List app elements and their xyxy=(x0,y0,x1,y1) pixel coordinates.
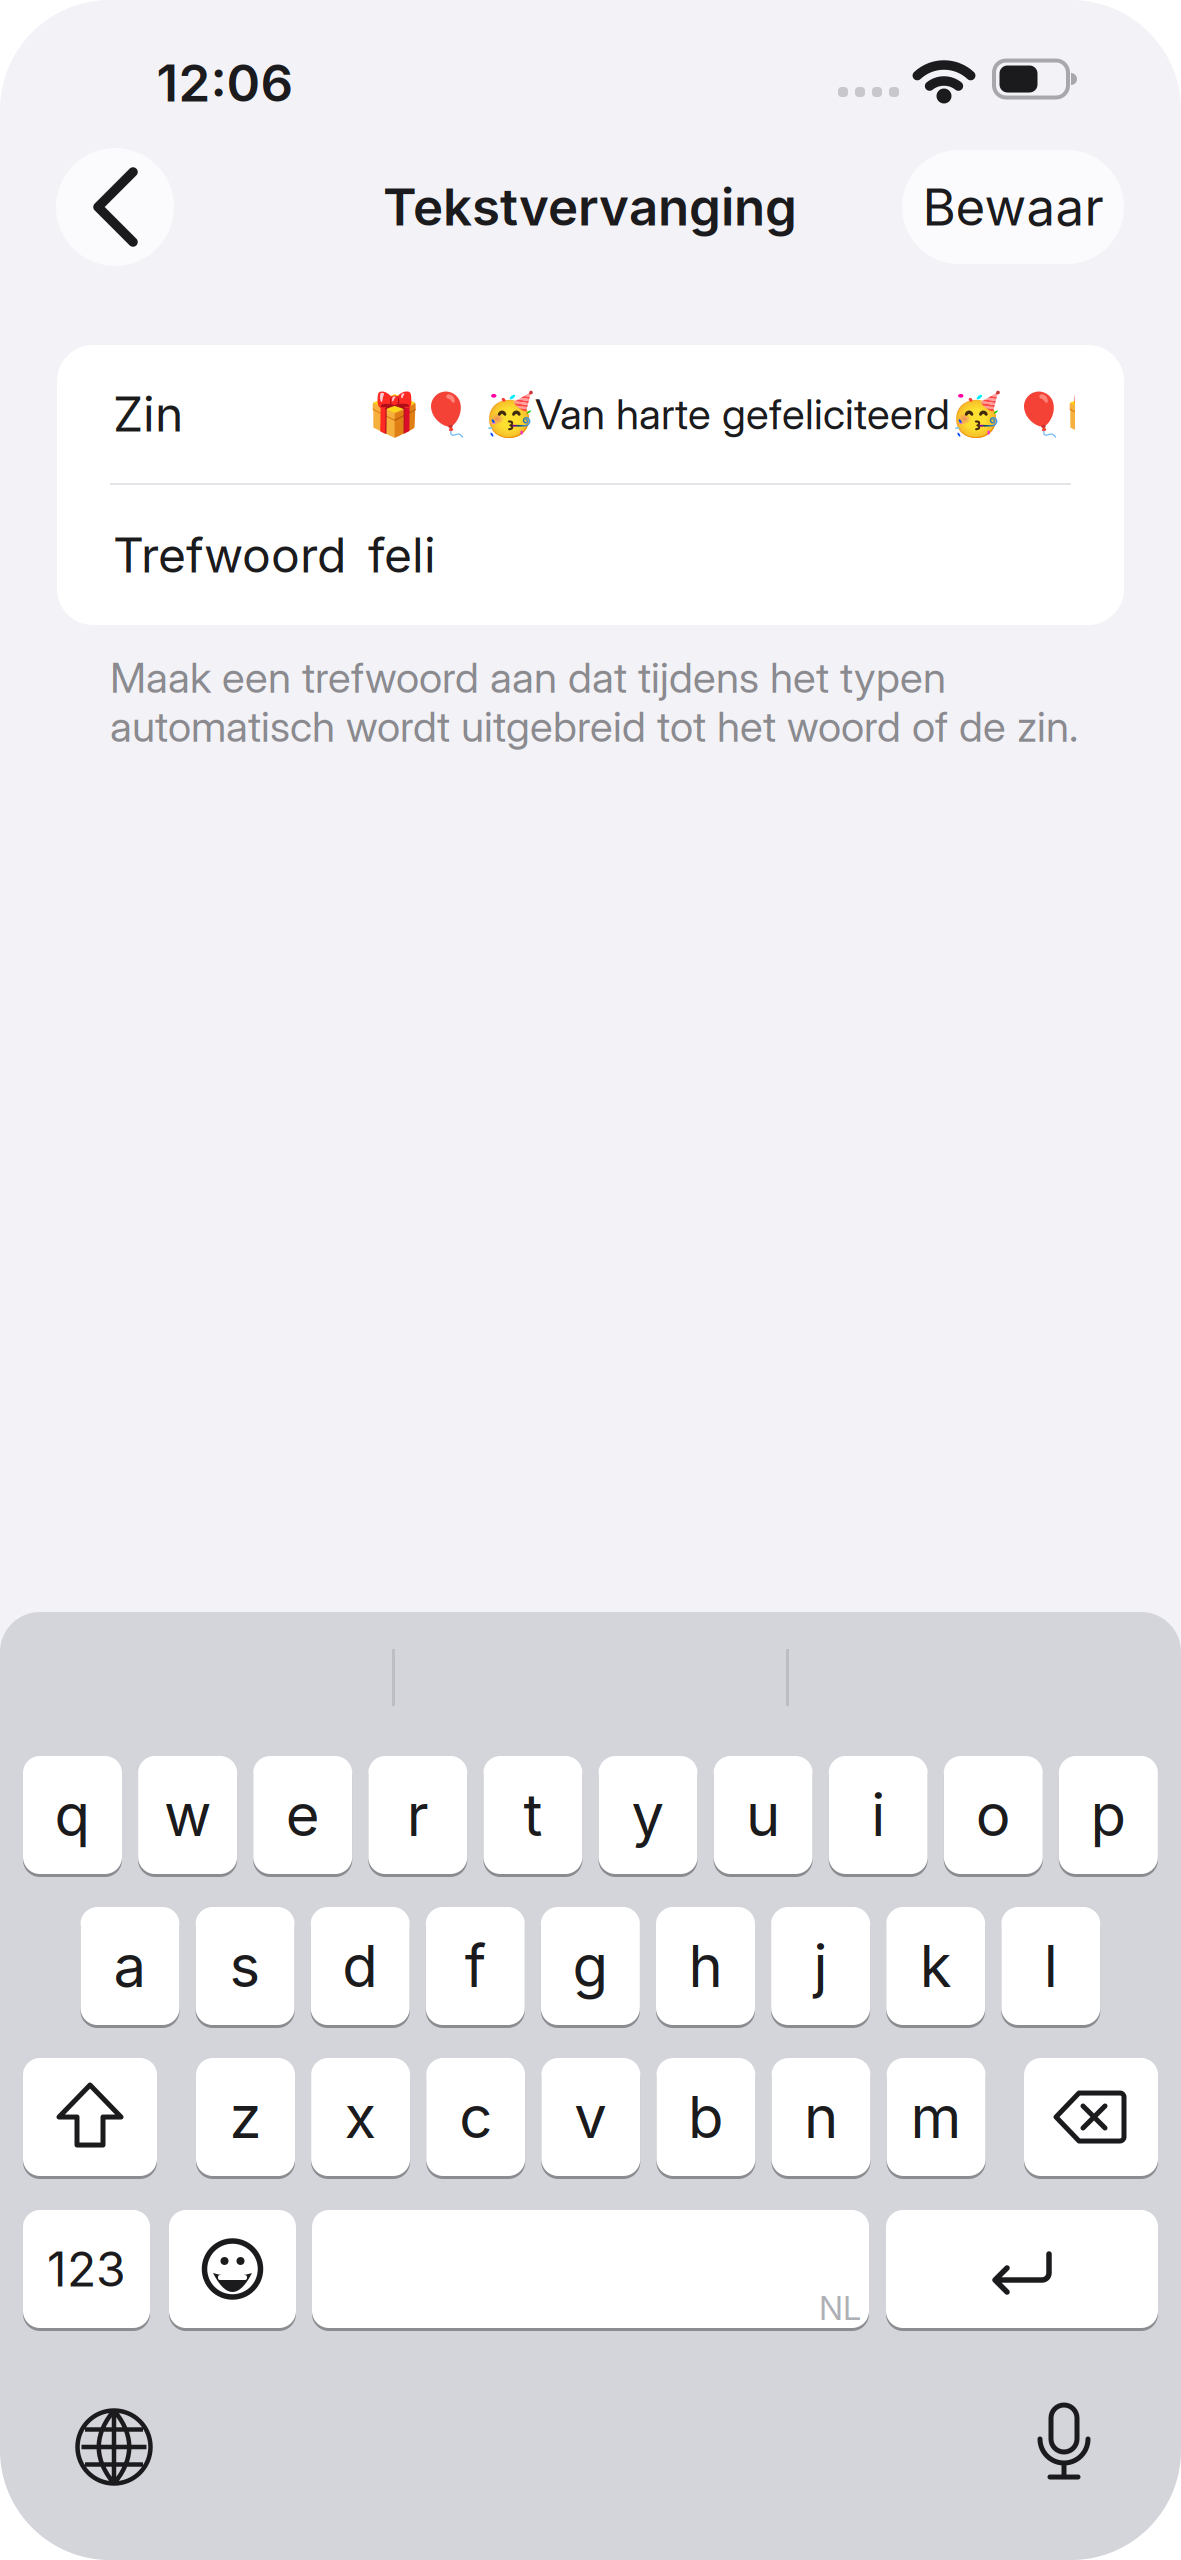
button[interactable]: Shift xyxy=(23,2058,157,2176)
button[interactable]: n xyxy=(771,2058,870,2176)
staticText: z xyxy=(229,2082,261,2152)
button[interactable]: q xyxy=(23,1756,122,1874)
staticText: 123 xyxy=(47,2240,126,2298)
button[interactable]: u xyxy=(714,1756,813,1874)
button[interactable]: k xyxy=(886,1907,985,2025)
staticText: Trefwoord xyxy=(113,526,346,584)
staticText: m xyxy=(911,2082,962,2152)
staticText: 12:06 xyxy=(156,52,293,114)
staticText: Maak een trefwoord aan dat tijdens het t… xyxy=(110,652,946,703)
staticText: q xyxy=(54,1780,90,1850)
button[interactable]: Dictation xyxy=(1026,2405,1102,2481)
button[interactable]: Delete xyxy=(1024,2058,1158,2176)
staticText: l xyxy=(1044,1931,1058,2001)
button[interactable]: 123 xyxy=(23,2210,150,2328)
staticText: k xyxy=(920,1931,952,2001)
button[interactable]: i xyxy=(829,1756,928,1874)
button[interactable]: s xyxy=(196,1907,295,2025)
button[interactable]: Back xyxy=(56,148,174,266)
staticText: r xyxy=(407,1780,429,1850)
button[interactable]: o xyxy=(944,1756,1043,1874)
button[interactable]: w xyxy=(138,1756,237,1874)
staticText: n xyxy=(804,2082,838,2152)
button[interactable]: Bewaar xyxy=(902,150,1124,264)
staticText: Bewaar xyxy=(922,176,1103,238)
staticText: u xyxy=(746,1780,780,1850)
staticText: h xyxy=(688,1931,722,2001)
button[interactable]: l xyxy=(1001,1907,1100,2025)
button[interactable]: p xyxy=(1059,1756,1158,1874)
button[interactable]: a xyxy=(80,1907,179,2025)
button[interactable]: h xyxy=(656,1907,755,2025)
staticText: f xyxy=(465,1931,486,2001)
staticText: Tekstvervanging xyxy=(383,176,797,238)
staticText: e xyxy=(286,1780,320,1850)
staticText: o xyxy=(976,1780,1011,1850)
staticText: v xyxy=(574,2082,607,2152)
button[interactable]: z xyxy=(196,2058,295,2176)
button[interactable]: m xyxy=(887,2058,986,2176)
button[interactable]: Trefwoord xyxy=(57,485,1124,625)
staticText: feli xyxy=(368,526,436,584)
staticText: j xyxy=(814,1931,828,2001)
staticText: p xyxy=(1090,1780,1126,1850)
staticText: c xyxy=(459,2082,492,2152)
staticText: 🎁🎈 🥳Van harte gefeliciteerd🥳 🎈🎁 xyxy=(368,388,1117,439)
staticText: automatisch wordt uitgebreid tot het woo… xyxy=(110,701,1078,752)
button[interactable]: Return xyxy=(886,2210,1158,2328)
button[interactable]: Next keyboard xyxy=(69,2402,159,2492)
button[interactable]: e xyxy=(253,1756,352,1874)
staticText: NL xyxy=(819,2288,861,2328)
button[interactable]: d xyxy=(311,1907,410,2025)
button[interactable]: Zin xyxy=(57,345,1124,483)
button[interactable]: j xyxy=(771,1907,870,2025)
button[interactable]: c xyxy=(426,2058,525,2176)
staticText: w xyxy=(164,1780,211,1850)
staticText: y xyxy=(631,1780,664,1850)
staticText: Zin xyxy=(113,385,183,443)
button[interactable]: r xyxy=(368,1756,467,1874)
button[interactable]: Emoji xyxy=(169,2210,296,2328)
staticText: b xyxy=(688,2082,724,2152)
staticText: x xyxy=(345,2082,377,2152)
staticText: s xyxy=(230,1931,261,2001)
button[interactable]: v xyxy=(541,2058,640,2176)
staticText: a xyxy=(113,1931,146,2001)
staticText: t xyxy=(523,1780,542,1850)
button[interactable]: t xyxy=(483,1756,582,1874)
button[interactable]: x xyxy=(311,2058,410,2176)
button[interactable]: f xyxy=(426,1907,525,2025)
button[interactable]: b xyxy=(656,2058,755,2176)
button[interactable]: g xyxy=(541,1907,640,2025)
staticText: d xyxy=(342,1931,378,2001)
button[interactable]: Space xyxy=(312,2210,869,2328)
staticText: i xyxy=(871,1780,885,1850)
staticText: g xyxy=(572,1931,608,2001)
button[interactable]: y xyxy=(598,1756,697,1874)
